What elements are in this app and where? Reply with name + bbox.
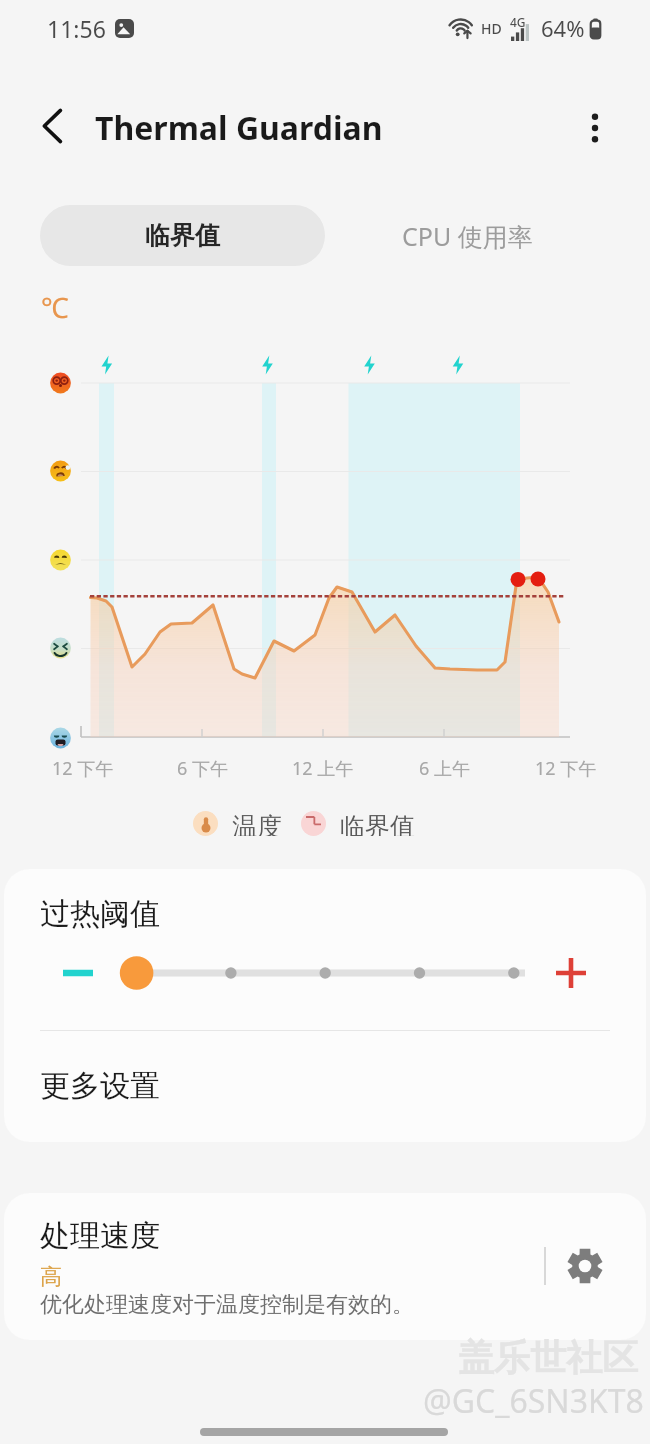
staticText: 临界值 xyxy=(145,220,220,251)
staticText: 温度 xyxy=(232,811,282,836)
button[interactable]: 处理速度 xyxy=(4,1193,646,1340)
staticText: 处理速度 xyxy=(40,1217,160,1255)
staticText: ℃ xyxy=(41,288,69,326)
staticText: HD xyxy=(481,19,502,38)
staticText: 盖乐世社区 xyxy=(458,1335,638,1380)
button[interactable]: Increase xyxy=(545,947,597,999)
staticText: 过热阈值 xyxy=(40,895,160,933)
staticText: 临界值 xyxy=(340,811,415,836)
staticText: 优化处理速度对于温度控制是有效的。 xyxy=(40,1291,414,1319)
staticText: 6 下午 xyxy=(177,756,228,781)
button[interactable]: More options xyxy=(567,100,623,156)
staticText: 11:56 xyxy=(47,13,106,44)
staticText: CPU 使用率 xyxy=(402,219,533,253)
staticText: 12 上午 xyxy=(292,756,354,781)
staticText: 12 下午 xyxy=(52,756,114,781)
button[interactable]: 临界值 xyxy=(40,205,325,266)
button[interactable]: Decrease xyxy=(52,947,104,999)
staticText: 64% xyxy=(541,13,585,43)
staticText: 更多设置 xyxy=(40,1067,160,1105)
button[interactable]: Back xyxy=(25,97,83,155)
staticText: 高 xyxy=(40,1263,62,1291)
button[interactable]: 更多设置 xyxy=(4,1036,646,1142)
button[interactable]: Settings xyxy=(543,1224,627,1308)
staticText: 4G xyxy=(510,14,526,30)
staticText: Thermal Guardian xyxy=(95,106,383,150)
staticText: 12 下午 xyxy=(535,756,597,781)
button[interactable]: CPU 使用率 xyxy=(325,205,610,266)
staticText: 6 上午 xyxy=(419,756,470,781)
staticText: @GC_6SN3KT8 xyxy=(423,1379,644,1423)
